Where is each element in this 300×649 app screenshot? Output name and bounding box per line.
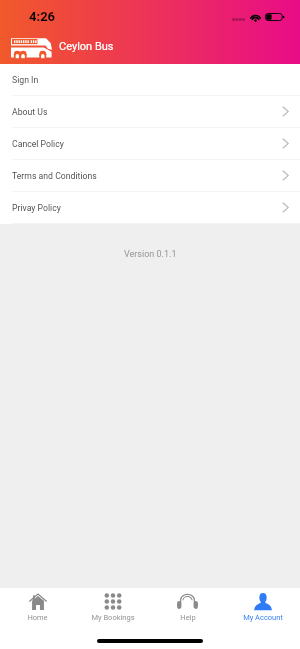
staticText: Help [180,613,196,622]
staticText: Terms and Conditions [12,171,97,181]
button[interactable]: About Us [0,96,300,128]
button[interactable]: Sign In [0,64,300,96]
staticText: Home [27,613,48,622]
button[interactable]: Home [0,590,75,622]
staticText: Sign In [12,75,39,85]
button[interactable]: My Bookings [75,590,150,622]
button[interactable]: Terms and Conditions [0,160,300,192]
staticText: About Us [12,107,48,117]
staticText: Ceylon Bus [59,40,114,53]
button[interactable]: My Account [225,590,300,622]
staticText: Version 0.1.1 [124,249,177,260]
button[interactable]: Cancel Policy [0,128,300,160]
staticText: My Account [243,613,283,622]
staticText: Privay Policy [12,203,61,213]
button[interactable]: Privay Policy [0,192,300,224]
staticText: 4:26 [29,9,56,24]
button[interactable]: Help [150,590,225,622]
staticText: My Bookings [91,613,135,622]
staticText: Cancel Policy [12,139,64,149]
